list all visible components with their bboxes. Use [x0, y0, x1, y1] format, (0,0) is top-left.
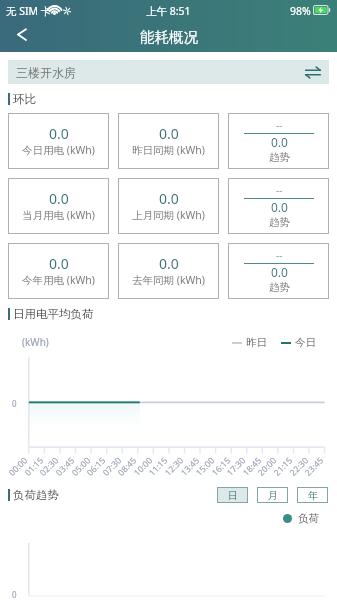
button[interactable]: 0.0	[118, 178, 219, 234]
staticText: 0	[12, 398, 17, 409]
staticText: 上月同期 (kWh)	[132, 208, 205, 222]
staticText: 负荷	[298, 512, 319, 525]
staticText: 08:45	[115, 455, 138, 478]
staticText: 0	[12, 589, 17, 600]
staticText: 今日	[295, 336, 316, 349]
other: Switch	[305, 66, 321, 79]
staticText: 日	[228, 489, 238, 502]
staticText: 0.0	[271, 199, 288, 215]
staticText: 趋势	[269, 216, 290, 229]
staticText: 02:30	[37, 455, 60, 478]
staticText: 年	[308, 489, 318, 502]
staticText: 0.0	[271, 134, 288, 150]
staticText: 负荷趋势	[13, 488, 59, 502]
staticText: 12:30	[162, 455, 185, 478]
staticText: 22:30	[287, 455, 310, 478]
button[interactable]: --	[228, 243, 329, 299]
staticText: 趋势	[269, 151, 290, 164]
staticText: 昨日同期 (kWh)	[132, 143, 205, 157]
staticText: 0.0	[159, 254, 179, 273]
staticText: (kWh)	[22, 335, 49, 349]
button[interactable]: 三楼开水房	[8, 60, 329, 84]
staticText: 0.0	[271, 264, 288, 280]
staticText: 03:45	[53, 455, 76, 478]
button[interactable]: 年	[297, 487, 328, 503]
staticText: 0.0	[49, 124, 69, 143]
staticText: 20:00	[255, 455, 278, 478]
staticText: 当月用电 (kWh)	[22, 208, 95, 222]
staticText: --	[276, 248, 283, 262]
staticText: 21:15	[271, 455, 294, 478]
staticText: 06:15	[84, 455, 107, 478]
staticText: 去年同期 (kWh)	[132, 273, 205, 287]
button[interactable]: 月	[257, 487, 288, 503]
staticText: 00:00	[6, 455, 29, 478]
staticText: 能耗概况	[140, 28, 198, 46]
button[interactable]: 0.0	[8, 243, 109, 299]
staticText: 0.0	[159, 189, 179, 208]
staticText: 11:15	[146, 455, 169, 478]
staticText: 上午 8:51	[146, 4, 191, 18]
staticText: 05:00	[69, 455, 92, 478]
staticText: 98%	[290, 4, 311, 18]
button[interactable]: 日	[217, 487, 248, 503]
staticText: 17:30	[224, 455, 247, 478]
staticText: --	[276, 183, 283, 197]
staticText: 昨日	[246, 336, 267, 349]
staticText: 趋势	[269, 281, 290, 294]
staticText: 环比	[13, 92, 36, 106]
staticText: 07:30	[100, 455, 123, 478]
staticText: 23:45	[302, 455, 325, 478]
button[interactable]: --	[228, 178, 329, 234]
staticText: --	[276, 118, 283, 132]
staticText: 15:00	[193, 455, 216, 478]
staticText: 0.0	[49, 254, 69, 273]
staticText: 日用电平均负荷	[13, 307, 94, 321]
staticText: 今年用电 (kWh)	[22, 273, 95, 287]
staticText: 13:45	[178, 455, 201, 478]
button[interactable]: 0.0	[8, 113, 109, 169]
button[interactable]: 0.0	[8, 178, 109, 234]
button[interactable]: 0.0	[118, 243, 219, 299]
staticText: 今日用电 (kWh)	[22, 143, 95, 157]
staticText: 10:00	[131, 455, 154, 478]
button[interactable]: 0.0	[118, 113, 219, 169]
staticText: 无 SIM 卡	[6, 4, 52, 18]
staticText: 18:45	[240, 455, 263, 478]
staticText: 三楼开水房	[16, 65, 305, 80]
staticText: 月	[268, 489, 278, 502]
staticText: 0.0	[159, 124, 179, 143]
button[interactable]: --	[228, 113, 329, 169]
staticText: 16:15	[209, 455, 232, 478]
button[interactable]: Back	[8, 23, 36, 51]
staticText: 01:15	[22, 455, 45, 478]
staticText: 0.0	[49, 189, 69, 208]
